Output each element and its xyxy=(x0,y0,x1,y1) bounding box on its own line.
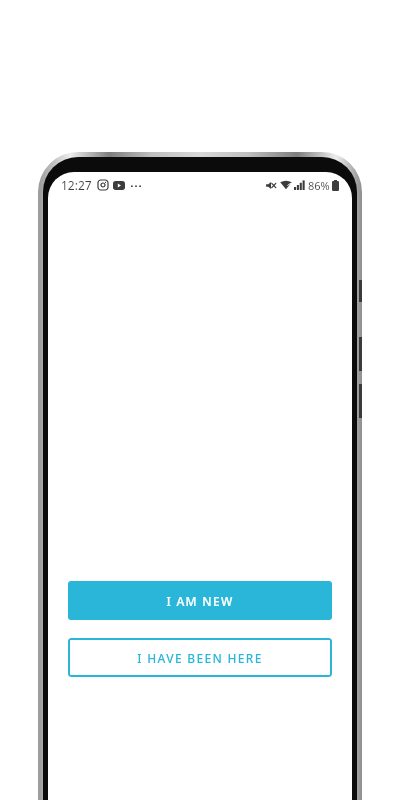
button[interactable]: I HAVE BEEN HERE xyxy=(68,638,332,677)
staticText: I AM NEW xyxy=(166,593,234,609)
staticText: I HAVE BEEN HERE xyxy=(137,650,263,666)
staticText: 12:27 xyxy=(61,177,92,193)
staticText: 86% xyxy=(308,178,330,193)
button[interactable]: I AM NEW xyxy=(68,581,332,620)
